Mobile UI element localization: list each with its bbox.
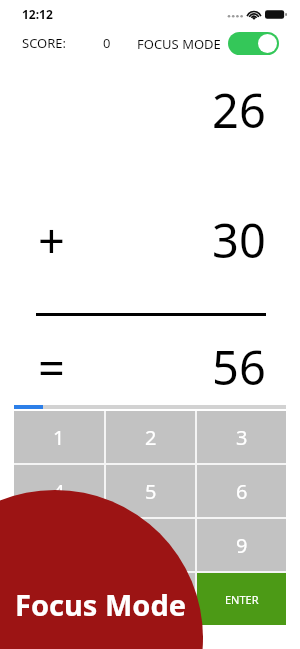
button[interactable]: 3 xyxy=(197,411,286,463)
button[interactable]: CLEAR xyxy=(14,573,104,625)
staticText: 6 xyxy=(236,478,248,505)
button[interactable]: ENTER xyxy=(197,573,286,625)
button[interactable]: 2 xyxy=(106,411,195,463)
button[interactable]: 6 xyxy=(197,465,286,517)
staticText: 4 xyxy=(53,478,65,505)
button[interactable]: 5 xyxy=(106,465,195,517)
staticText: 5 xyxy=(145,478,157,505)
button[interactable]: 9 xyxy=(197,519,286,571)
button[interactable]: 8 xyxy=(106,519,195,571)
staticText: 12:12 xyxy=(22,6,53,22)
staticText: 0 xyxy=(145,586,157,613)
staticText: 2 xyxy=(145,424,157,451)
staticText: 1 xyxy=(53,424,65,451)
staticText: = xyxy=(38,335,65,399)
staticText: + xyxy=(38,208,65,272)
staticText: 26 xyxy=(212,78,266,142)
staticText: SCORE: xyxy=(22,34,67,52)
staticText: FOCUS MODE xyxy=(137,35,221,53)
staticText: Focus Mode xyxy=(15,585,187,624)
button[interactable]: 4 xyxy=(14,465,104,517)
staticText: ENTER xyxy=(225,592,259,607)
staticText: 3 xyxy=(236,424,248,451)
staticText: 56 xyxy=(212,335,266,399)
staticText: 30 xyxy=(212,208,266,272)
button[interactable]: 1 xyxy=(14,411,104,463)
staticText: 0 xyxy=(103,34,111,52)
staticText: 9 xyxy=(236,532,248,559)
other: Focus mode toggle xyxy=(228,32,279,55)
button[interactable]: 0 xyxy=(106,573,195,625)
button[interactable]: FOCUS MODE xyxy=(137,32,279,55)
staticText: CLEAR xyxy=(43,592,76,607)
